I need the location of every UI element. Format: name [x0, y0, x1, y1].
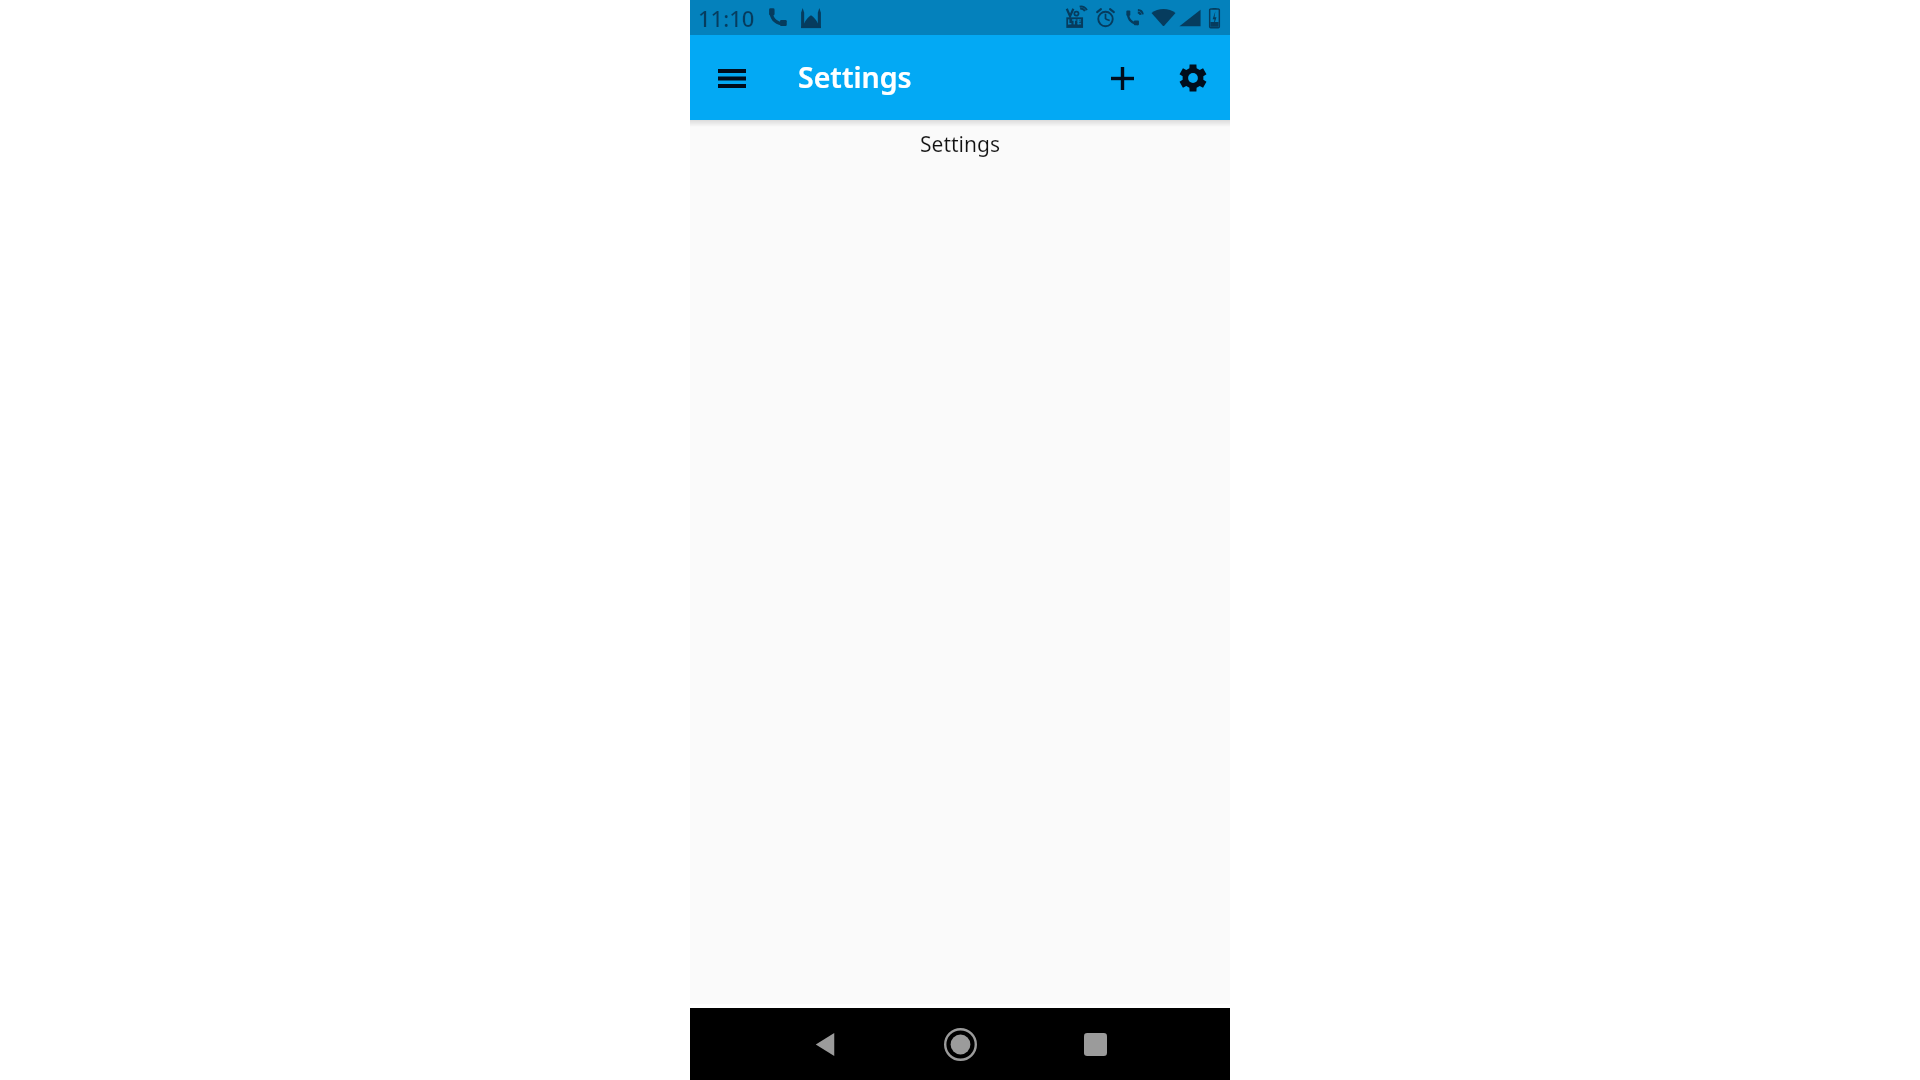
button[interactable]: Recents [1065, 1014, 1125, 1074]
staticText: Settings [798, 58, 912, 97]
button[interactable]: Menu [711, 57, 753, 99]
button[interactable]: Home [930, 1014, 990, 1074]
staticText: Settings [690, 130, 1230, 159]
staticText: 11:10 [698, 3, 755, 33]
button[interactable]: Back [795, 1014, 855, 1074]
button[interactable]: Settings [1169, 54, 1217, 102]
button[interactable]: Add [1098, 54, 1146, 102]
